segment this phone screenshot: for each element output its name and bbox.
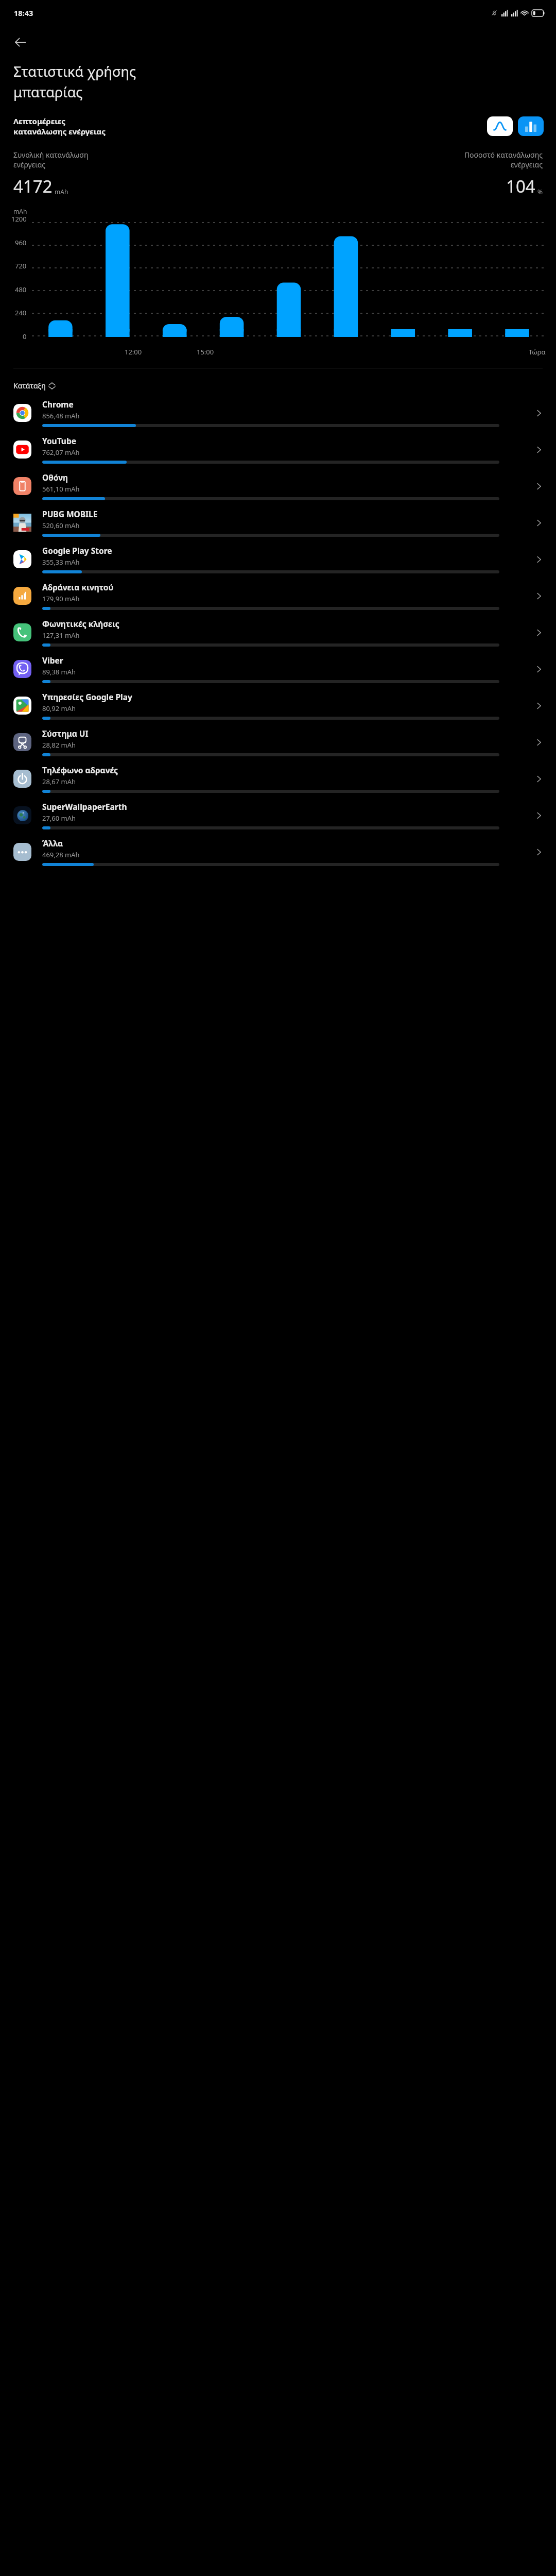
staticText: 720	[15, 261, 27, 270]
button[interactable]: Οθόνη	[0, 468, 556, 504]
staticText: 520,60 mAh	[42, 521, 80, 530]
staticText: Συνολική κατανάλωση ενέργειας	[13, 150, 89, 170]
staticText: Λεπτομέρειες	[13, 116, 66, 126]
button[interactable]: Τηλέφωνο αδρανές	[0, 760, 556, 797]
staticText: 4172	[13, 175, 53, 198]
button[interactable]: YouTube	[0, 431, 556, 468]
button[interactable]: Αδράνεια κινητού	[0, 578, 556, 614]
staticText: 104	[506, 175, 535, 198]
staticText: Chrome	[42, 399, 74, 410]
staticText: Φωνητικές κλήσεις	[42, 618, 119, 629]
staticText: κατανάλωσης ενέργειας	[13, 126, 106, 137]
staticText: Viber	[42, 655, 63, 666]
staticText: 179,90 mAh	[42, 594, 80, 603]
staticText: 27,60 mAh	[42, 814, 76, 823]
staticText: Οθόνη	[42, 472, 68, 483]
staticText: 18:43	[14, 8, 33, 18]
staticText: Αδράνεια κινητού	[42, 582, 114, 592]
staticText: 480	[15, 285, 27, 294]
staticText: 28,82 mAh	[42, 740, 76, 750]
staticText: %	[537, 188, 543, 196]
button[interactable]: Φωνητικές κλήσεις	[0, 614, 556, 651]
staticText: 240	[15, 308, 27, 317]
staticText: mAh	[55, 188, 68, 196]
staticText: Τώρα	[529, 347, 546, 357]
staticText: 12:00	[125, 347, 142, 357]
staticText: 127,31 mAh	[42, 631, 80, 640]
staticText: Άλλα	[42, 838, 63, 849]
staticText: 960	[15, 238, 27, 247]
staticText: Υπηρεσίες Google Play	[42, 691, 132, 702]
staticText: 856,48 mAh	[42, 411, 80, 420]
staticText: 762,07 mAh	[42, 448, 80, 457]
button[interactable]: Back	[7, 29, 34, 56]
button[interactable]: SuperWallpaperEarth	[0, 797, 556, 834]
staticText: 89,38 mAh	[42, 667, 76, 676]
staticText: 469,28 mAh	[42, 850, 80, 859]
staticText: YouTube	[42, 435, 76, 446]
button[interactable]: Bar chart view	[518, 116, 544, 136]
staticText: 561,10 mAh	[42, 484, 80, 494]
staticText: Κατάταξη	[13, 381, 46, 391]
button[interactable]: Σύστημα UI	[0, 724, 556, 760]
button[interactable]: PUBG MOBILE	[0, 504, 556, 541]
staticText: 1200	[11, 214, 27, 224]
button[interactable]: Κατάταξη	[0, 368, 556, 395]
staticText: 355,33 mAh	[42, 557, 80, 567]
staticText: mAh	[13, 207, 27, 215]
button[interactable]: Chrome	[0, 395, 556, 431]
staticText: μπαταρίας	[13, 82, 83, 101]
staticText: 28,67 mAh	[42, 777, 76, 786]
staticText: Google Play Store	[42, 545, 112, 556]
staticText: Σύστημα UI	[42, 728, 89, 739]
staticText: Τηλέφωνο αδρανές	[42, 765, 118, 775]
button[interactable]: Viber	[0, 651, 556, 687]
staticText: Ποσοστό κατανάλωσης ενέργειας	[464, 150, 543, 170]
staticText: 80,92 mAh	[42, 704, 76, 713]
staticText: 0	[23, 332, 27, 341]
staticText: 15:00	[197, 347, 214, 357]
button[interactable]: Υπηρεσίες Google Play	[0, 687, 556, 724]
staticText: SuperWallpaperEarth	[42, 801, 127, 812]
button[interactable]: Άλλα	[0, 834, 556, 870]
staticText: PUBG MOBILE	[42, 509, 98, 519]
button[interactable]: Curve view	[487, 116, 513, 136]
staticText: Στατιστικά χρήσης	[13, 62, 136, 81]
button[interactable]: Google Play Store	[0, 541, 556, 578]
